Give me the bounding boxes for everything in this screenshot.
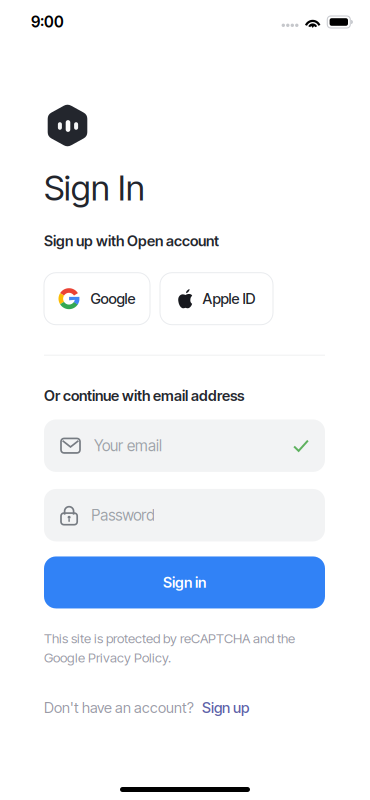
- button[interactable]: Google: [44, 273, 150, 325]
- staticText: Password: [91, 506, 155, 524]
- staticText: Your email: [94, 436, 162, 455]
- staticText: Google: [90, 290, 135, 307]
- staticText: Google Privacy Policy.: [44, 650, 171, 666]
- staticText: Don't have an account?: [44, 699, 194, 716]
- staticText: Sign In: [44, 167, 145, 209]
- button[interactable]: Sign up: [202, 699, 249, 716]
- staticText: Apple ID: [202, 290, 255, 307]
- staticText: Or continue with email address: [44, 387, 244, 404]
- staticText: 9:00: [31, 13, 64, 31]
- button[interactable]: Apple ID: [160, 273, 273, 325]
- staticText: Sign up with Open account: [44, 232, 219, 250]
- staticText: Sign up: [202, 699, 249, 716]
- staticText: This site is protected by reCAPTCHA and …: [44, 630, 295, 646]
- button[interactable]: Sign in: [44, 556, 325, 608]
- staticText: Sign in: [163, 574, 206, 591]
